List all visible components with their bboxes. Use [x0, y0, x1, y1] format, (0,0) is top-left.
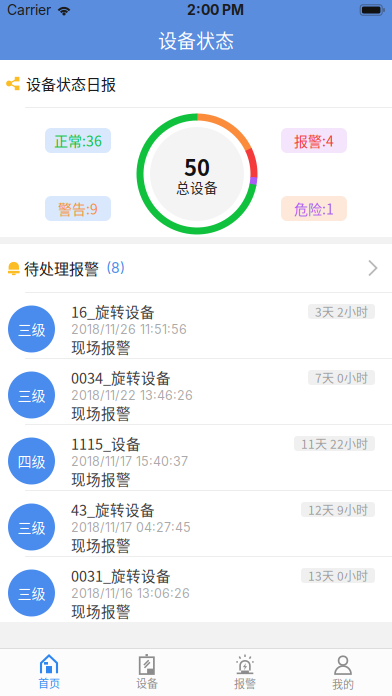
staticText: Carrier: [7, 1, 51, 18]
staticText: 报警:4: [294, 130, 334, 151]
staticText: 设备状态日报: [26, 73, 116, 94]
staticText: 0034_旋转设备: [71, 367, 171, 388]
staticText: 2018/11/16 13:06:26: [71, 586, 190, 601]
button[interactable]: 四级: [0, 424, 392, 490]
button[interactable]: 首页: [0, 649, 98, 696]
staticText: 1115_设备: [71, 433, 141, 454]
staticText: 三级: [17, 583, 45, 603]
staticText: 2018/11/26 11:51:56: [71, 322, 187, 337]
staticText: 16_旋转设备: [71, 301, 155, 322]
button[interactable]: 三级: [0, 490, 392, 556]
staticText: 50: [184, 151, 210, 182]
staticText: 警告:9: [58, 198, 98, 219]
staticText: 现场报警: [71, 336, 131, 357]
staticText: 12天 9小时: [308, 501, 368, 518]
button[interactable]: 报警: [196, 649, 294, 696]
button[interactable]: 三级: [0, 358, 392, 424]
staticText: 设备: [136, 675, 158, 691]
staticText: 现场报警: [71, 402, 131, 423]
staticText: 待处理报警: [24, 257, 99, 279]
button[interactable]: 三级: [0, 556, 392, 622]
staticText: 2018/11/17 04:27:45: [71, 520, 191, 535]
staticText: 三级: [17, 319, 45, 339]
staticText: 2018/11/22 13:46:26: [71, 388, 193, 403]
staticText: 11天 22小时: [301, 435, 368, 452]
staticText: 四级: [17, 451, 45, 471]
staticText: 现场报警: [71, 600, 131, 621]
staticText: 3天 2小时: [315, 303, 368, 320]
staticText: 13天 0小时: [308, 567, 368, 584]
staticText: 总设备: [176, 177, 218, 197]
button[interactable]: 三级: [0, 292, 392, 358]
staticText: 现场报警: [71, 468, 131, 489]
button[interactable]: 待处理报警: [0, 244, 392, 292]
staticText: 危险:1: [294, 198, 334, 219]
staticText: 三级: [17, 385, 45, 405]
staticText: 正常:36: [54, 130, 102, 151]
staticText: 0031_旋转设备: [71, 565, 171, 586]
staticText: 设备状态: [158, 26, 234, 54]
staticText: 现场报警: [71, 534, 131, 555]
staticText: 首页: [38, 675, 60, 691]
staticText: 报警: [234, 675, 256, 691]
staticText: 43_旋转设备: [71, 499, 155, 520]
staticText: 7天 0小时: [315, 369, 368, 386]
button[interactable]: 设备: [98, 649, 196, 696]
staticText: 2:00 PM: [187, 1, 244, 18]
staticText: 我的: [332, 676, 354, 692]
staticText: 三级: [17, 517, 45, 537]
staticText: (8): [106, 259, 125, 276]
button[interactable]: 我的: [294, 649, 392, 696]
staticText: 2018/11/17 15:40:37: [71, 454, 188, 469]
